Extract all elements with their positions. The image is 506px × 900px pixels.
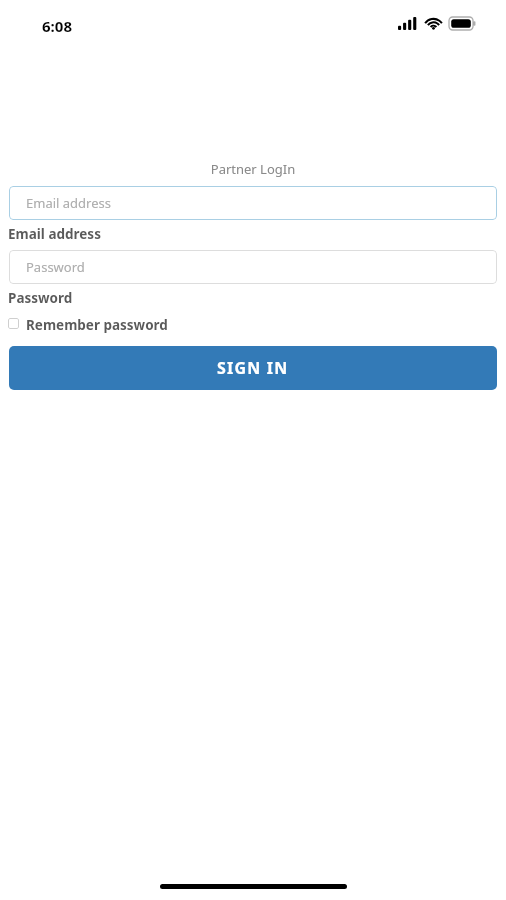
staticText: Email address [8,225,101,243]
button[interactable]: Remember password checkbox [8,314,174,336]
staticText: Password [26,258,85,276]
staticText: Password [8,289,73,307]
button[interactable]: Email address [9,186,497,220]
staticText: 6:08 [42,16,72,36]
button[interactable]: Password [9,250,497,284]
staticText: SIGN IN [217,357,289,379]
staticText: Email address [26,194,111,212]
staticText: Partner LogIn [0,160,506,178]
other: Remember password checkbox [8,318,19,329]
button[interactable]: SIGN IN [9,346,497,390]
staticText: Remember password [26,316,168,334]
